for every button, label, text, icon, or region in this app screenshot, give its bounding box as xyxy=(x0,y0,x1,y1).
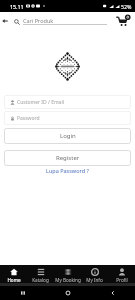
button[interactable]: Register xyxy=(4,150,131,166)
staticText: My Booking xyxy=(55,277,81,283)
button[interactable]: My Info xyxy=(81,266,108,283)
button[interactable]: Recents xyxy=(0,290,45,296)
button[interactable]: Lupa Password ? xyxy=(46,167,89,174)
staticText: Customer ID / Email xyxy=(17,99,64,106)
button[interactable]: Customer ID / Email xyxy=(4,95,131,109)
staticText: Login xyxy=(60,132,76,140)
button[interactable]: Login xyxy=(4,128,131,144)
staticText: Password xyxy=(17,115,40,122)
button[interactable]: Cari Produk xyxy=(14,18,107,25)
button[interactable]: Back xyxy=(90,290,135,296)
button[interactable]: Back xyxy=(0,12,10,30)
staticText: My Info xyxy=(86,277,103,283)
staticText: Register xyxy=(56,154,80,162)
button[interactable]: Password xyxy=(4,111,131,125)
button[interactable]: Profil xyxy=(108,266,135,283)
staticText: Profil xyxy=(116,277,128,283)
button[interactable]: Home xyxy=(0,266,27,283)
button[interactable]: My Booking xyxy=(54,266,81,283)
staticText: Katalog xyxy=(32,277,49,283)
button[interactable]: Katalog xyxy=(27,266,54,283)
staticText: Home xyxy=(7,277,21,283)
staticText: Cari Produk xyxy=(23,17,54,24)
staticText: 52% xyxy=(121,3,132,10)
button[interactable]: Home xyxy=(45,290,90,296)
staticText: 15.11 xyxy=(10,3,24,10)
button[interactable]: Cart xyxy=(113,12,135,30)
